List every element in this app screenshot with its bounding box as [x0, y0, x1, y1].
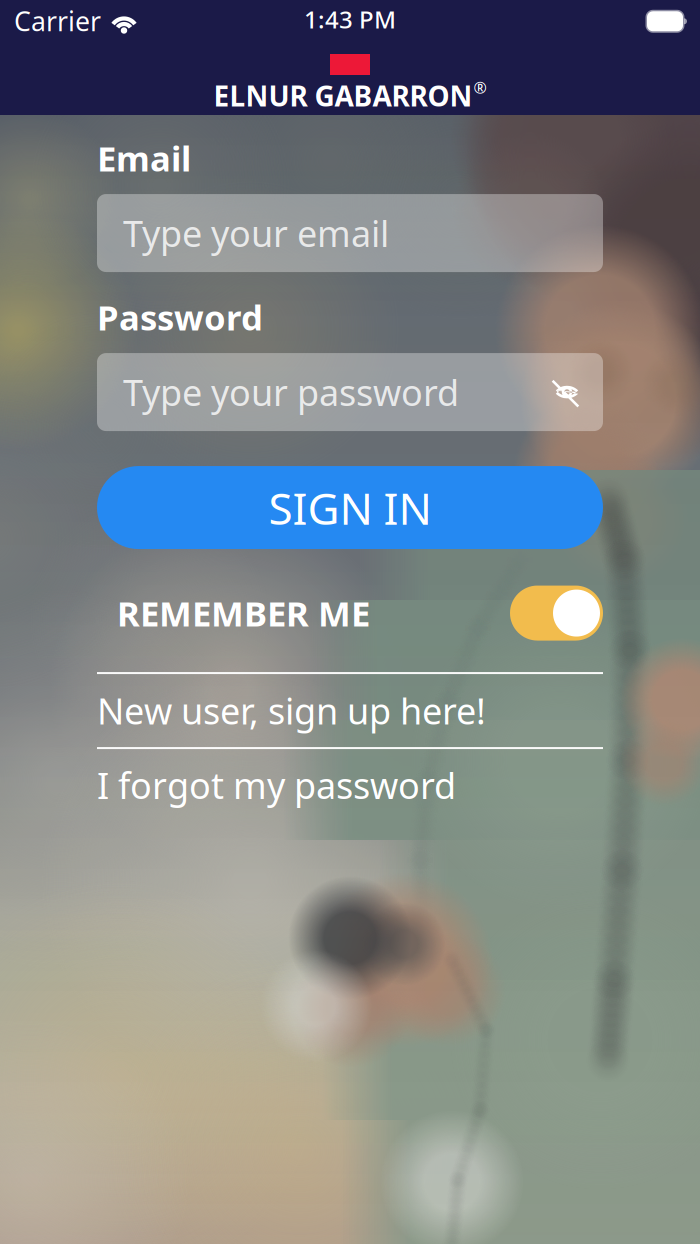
staticText: REMEMBER ME: [117, 590, 370, 636]
staticText: 1:43 PM: [304, 3, 396, 35]
staticText: ELNUR GABARRON: [213, 77, 472, 114]
staticText: ®: [473, 77, 486, 98]
button[interactable]: New user, sign up here!: [97, 674, 603, 747]
staticText: I forgot my password: [97, 761, 456, 809]
button[interactable]: SIGN IN: [97, 466, 603, 549]
button[interactable]: I forgot my password: [97, 749, 603, 821]
staticText: Type your email: [123, 209, 389, 257]
staticText: Carrier: [14, 3, 101, 39]
staticText: SIGN IN: [268, 478, 431, 537]
staticText: Type your password: [123, 368, 459, 416]
button[interactable]: Show password: [551, 377, 583, 407]
button[interactable]: REMEMBER ME: [97, 581, 603, 645]
staticText: New user, sign up here!: [97, 687, 486, 734]
staticText: Password: [97, 294, 263, 340]
staticText: Email: [97, 135, 191, 181]
